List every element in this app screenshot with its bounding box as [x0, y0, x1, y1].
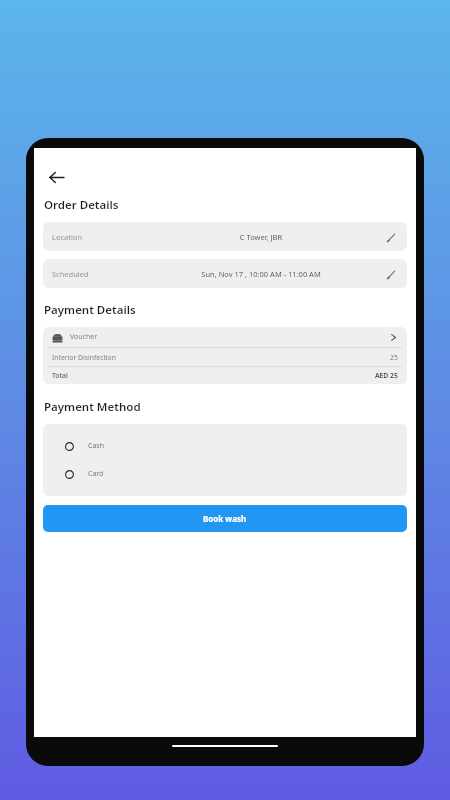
- staticText: Payment Details: [44, 302, 136, 318]
- staticText: Interior Disinfection: [52, 353, 116, 362]
- staticText: Book wash: [203, 513, 247, 524]
- button[interactable]: Voucher: [43, 327, 407, 347]
- staticText: 25: [390, 353, 398, 362]
- button[interactable]: Book wash: [43, 505, 407, 532]
- staticText: Order Details: [44, 197, 119, 213]
- staticText: Voucher: [70, 332, 98, 342]
- staticText: AED 25: [375, 371, 398, 380]
- button[interactable]: Card: [43, 466, 407, 482]
- staticText: Sun, Nov 17 , 10:00 AM - 11:00 AM: [138, 269, 384, 279]
- staticText: Total: [52, 371, 68, 380]
- button[interactable]: Scheduled: [43, 259, 407, 288]
- staticText: Scheduled: [52, 269, 138, 279]
- button[interactable]: Back: [43, 164, 69, 190]
- staticText: Card: [88, 469, 104, 479]
- button[interactable]: Location: [43, 222, 407, 251]
- staticText: Cash: [88, 441, 105, 451]
- button[interactable]: Cash: [43, 438, 407, 454]
- staticText: Location: [52, 232, 138, 242]
- staticText: C Tower, JBR: [138, 232, 384, 242]
- staticText: Payment Method: [44, 399, 141, 415]
